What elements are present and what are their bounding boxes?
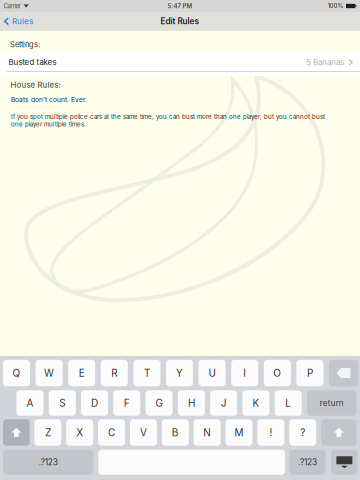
button[interactable]: E xyxy=(68,360,95,386)
staticText: Rules xyxy=(12,16,33,26)
button[interactable]: F xyxy=(113,390,140,416)
staticText: S xyxy=(59,397,65,409)
button[interactable]: Delete xyxy=(329,360,358,386)
button[interactable]: D xyxy=(81,390,108,416)
button[interactable]: L xyxy=(275,390,302,416)
button[interactable]: Shift xyxy=(321,419,356,446)
staticText: H xyxy=(188,397,195,409)
staticText: 5:47 PM xyxy=(167,2,192,10)
button[interactable]: Q xyxy=(3,360,30,386)
button[interactable]: return xyxy=(307,390,356,416)
staticText: .?123 xyxy=(39,457,58,467)
staticText: N xyxy=(203,426,211,439)
button[interactable]: A xyxy=(16,390,43,416)
staticText: Y xyxy=(176,367,183,379)
staticText: D xyxy=(91,397,98,409)
staticText: J xyxy=(221,397,227,409)
button[interactable]: M xyxy=(225,419,252,446)
staticText: House Rules: xyxy=(10,80,60,90)
staticText: Busted takes xyxy=(8,57,56,67)
button[interactable]: Y xyxy=(166,360,193,386)
button[interactable]: S xyxy=(49,390,76,416)
button[interactable]: ? xyxy=(289,419,316,446)
button[interactable]: R xyxy=(101,360,128,386)
button[interactable]: T xyxy=(133,360,160,386)
button[interactable]: C xyxy=(98,419,125,446)
button[interactable]: O xyxy=(264,360,291,386)
button[interactable]: I xyxy=(231,360,258,386)
button[interactable]: X xyxy=(66,419,93,446)
staticText: I xyxy=(243,367,246,379)
button[interactable]: N xyxy=(194,419,221,446)
button[interactable]: Dismiss keyboard xyxy=(331,450,357,475)
staticText: If you spot multiple police cars at the … xyxy=(11,113,325,128)
staticText: V xyxy=(140,426,147,439)
button[interactable]: U xyxy=(199,360,226,386)
staticText: A xyxy=(26,397,33,409)
button[interactable]: B xyxy=(162,419,189,446)
button[interactable]: V xyxy=(130,419,157,446)
staticText: C xyxy=(108,426,115,439)
staticText: return xyxy=(320,398,344,408)
button[interactable]: G xyxy=(146,390,173,416)
button[interactable]: W xyxy=(36,360,63,386)
staticText: L xyxy=(285,397,291,409)
staticText: T xyxy=(144,367,150,379)
button[interactable]: Shift xyxy=(3,419,30,446)
staticText: 100% xyxy=(328,3,344,9)
staticText: 5 Bananas xyxy=(306,57,344,67)
button[interactable]: P xyxy=(296,360,323,386)
staticText: Settings: xyxy=(10,40,40,49)
staticText: M xyxy=(234,426,243,439)
staticText: W xyxy=(44,367,54,379)
staticText: F xyxy=(124,397,130,409)
staticText: K xyxy=(252,397,259,409)
staticText: Q xyxy=(12,367,20,379)
staticText: Boats don't count. Ever. xyxy=(11,95,87,104)
staticText: R xyxy=(111,367,117,379)
button[interactable]: .?123 xyxy=(3,450,93,475)
button[interactable]: .?123 xyxy=(289,450,325,475)
staticText: ! xyxy=(269,426,272,439)
button[interactable]: Rules xyxy=(0,12,44,30)
staticText: O xyxy=(273,367,281,379)
staticText: ? xyxy=(300,426,305,439)
button[interactable]: K xyxy=(242,390,269,416)
button[interactable]: J xyxy=(210,390,237,416)
staticText: .?123 xyxy=(298,457,317,467)
button[interactable]: ! xyxy=(257,419,284,446)
staticText: P xyxy=(307,367,313,379)
staticText: E xyxy=(79,367,85,379)
button[interactable]: Busted takes xyxy=(0,52,360,72)
staticText: Carrier xyxy=(4,2,21,10)
button[interactable]: H xyxy=(178,390,205,416)
staticText: U xyxy=(209,367,216,379)
staticText: Z xyxy=(45,426,51,439)
staticText: X xyxy=(76,426,83,439)
staticText: Edit Rules xyxy=(160,16,199,26)
staticText: G xyxy=(156,397,163,409)
staticText: B xyxy=(172,426,179,439)
button[interactable]: Z xyxy=(34,419,61,446)
